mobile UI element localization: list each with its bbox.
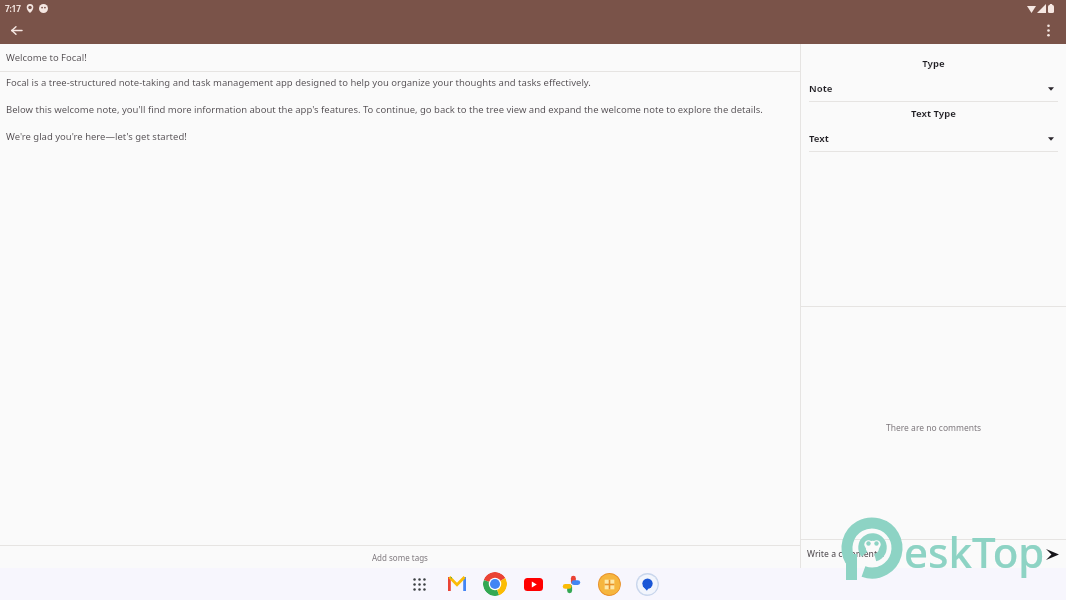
button[interactable]: Add some tags [0,546,800,568]
button[interactable]: Back [0,16,32,44]
staticText: Focal is a tree-structured note-taking a… [6,76,591,89]
button[interactable]: Messages [635,572,659,596]
button[interactable]: More options [1033,16,1063,44]
staticText: Text Type [801,107,1066,120]
staticText: We're glad you're here—let's get started… [6,130,187,143]
staticText: Below this welcome note, you'll find mor… [6,103,763,116]
staticText: Write a comment... [807,548,885,560]
staticText: Add some tags [372,552,428,563]
staticText: Type [801,57,1066,70]
button[interactable]: Gmail [445,572,469,596]
button[interactable]: YouTube [521,572,545,596]
staticText: Welcome to Focal! [6,51,87,64]
staticText: eskTop [904,523,1045,580]
button[interactable]: All apps [407,572,431,596]
staticText: There are no comments [886,422,982,434]
button[interactable]: Text [809,132,1058,145]
button[interactable]: Welcome to Focal! [0,44,800,71]
button[interactable]: Keep [597,572,621,596]
staticText: Note [809,82,833,95]
staticText: Text [809,132,829,145]
button[interactable]: Photos [559,572,583,596]
button[interactable]: Send [1042,544,1062,564]
button[interactable]: Note [809,82,1058,95]
button[interactable]: Chrome [483,572,507,596]
staticText: 7:17 [5,3,21,14]
